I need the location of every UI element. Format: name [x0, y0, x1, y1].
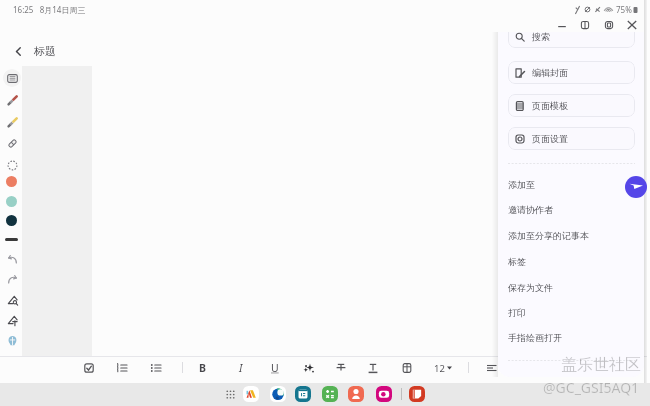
- button[interactable]: Eraser: [3, 134, 21, 152]
- button[interactable]: U: [266, 359, 284, 377]
- button[interactable]: Lasso select: [3, 156, 21, 174]
- staticText: 手指绘画打开: [508, 332, 562, 343]
- button[interactable]: 手指绘画打开: [498, 324, 644, 350]
- staticText: 标签: [508, 256, 526, 267]
- button[interactable]: All apps: [222, 386, 238, 402]
- staticText: 75%: [616, 4, 632, 15]
- staticText: 添加至: [508, 179, 535, 190]
- button[interactable]: 页面设置: [508, 127, 635, 150]
- button[interactable]: Numbered list: [113, 359, 131, 377]
- button[interactable]: B: [193, 359, 211, 377]
- button[interactable]: 页面模板: [508, 94, 635, 117]
- button[interactable]: App: [270, 386, 286, 402]
- button[interactable]: 打印: [498, 299, 644, 325]
- button[interactable]: Convert to text: [3, 311, 21, 329]
- button[interactable]: Stroke width: [5, 238, 18, 241]
- staticText: 16:25 8月14日周三: [13, 4, 86, 15]
- staticText: 搜索: [532, 32, 550, 42]
- button[interactable]: Close: [623, 16, 641, 34]
- staticText: 盖乐世社区: [561, 355, 641, 375]
- button[interactable]: 编辑封面: [508, 61, 635, 84]
- staticText: 标题: [34, 44, 56, 58]
- button[interactable]: Pen: [3, 91, 21, 109]
- button[interactable]: App: [295, 386, 311, 402]
- staticText: 12: [434, 362, 445, 375]
- button[interactable]: App: [376, 386, 392, 402]
- button[interactable]: Assistant: [3, 331, 21, 349]
- button[interactable]: 搜索: [508, 32, 635, 48]
- button[interactable]: Underline text: [364, 359, 382, 377]
- button[interactable]: 邀请协作者: [498, 196, 644, 222]
- button[interactable]: Redo: [3, 270, 21, 288]
- button[interactable]: Checklist: [80, 359, 98, 377]
- button[interactable]: Pop-up view: [600, 16, 618, 34]
- button[interactable]: App: [243, 386, 259, 402]
- button[interactable]: Text box: [3, 69, 21, 87]
- staticText: 编辑封面: [532, 67, 568, 78]
- button[interactable]: Colour: [6, 196, 17, 207]
- button[interactable]: 添加至分享的记事本: [498, 222, 644, 248]
- button[interactable]: 标签: [498, 248, 644, 274]
- button[interactable]: 添加至: [498, 171, 644, 197]
- button[interactable]: Strikethrough: [332, 359, 350, 377]
- staticText: 添加至分享的记事本: [508, 230, 589, 241]
- button[interactable]: App: [322, 386, 338, 402]
- staticText: 页面设置: [532, 133, 568, 144]
- button[interactable]: Bulleted list: [147, 359, 165, 377]
- button[interactable]: 保存为文件: [498, 274, 644, 300]
- button[interactable]: App: [348, 386, 364, 402]
- staticText: @GC_GSI5AQ1: [543, 378, 640, 397]
- button[interactable]: Table: [398, 359, 416, 377]
- button[interactable]: Send: [625, 176, 647, 198]
- button[interactable]: Back: [8, 41, 28, 61]
- button[interactable]: Convert to shape: [3, 291, 21, 309]
- staticText: 保存为文件: [508, 282, 553, 293]
- staticText: I: [239, 361, 243, 375]
- staticText: B: [199, 361, 206, 375]
- button[interactable]: Minimize: [553, 16, 571, 34]
- staticText: 打印: [508, 307, 526, 318]
- button[interactable]: Colour: [6, 215, 17, 226]
- staticText: U: [271, 361, 279, 375]
- staticText: 页面模板: [532, 100, 568, 111]
- button[interactable]: 12: [434, 361, 452, 375]
- button[interactable]: Highlight: [300, 359, 318, 377]
- button[interactable]: I: [232, 359, 250, 377]
- button[interactable]: Align: [483, 359, 501, 377]
- button[interactable]: Undo: [3, 250, 21, 268]
- button[interactable]: App: [409, 386, 425, 402]
- button[interactable]: Colour: [6, 176, 17, 187]
- button[interactable]: Highlighter: [3, 113, 21, 131]
- button[interactable]: Split screen: [576, 16, 594, 34]
- staticText: 邀请协作者: [508, 204, 553, 215]
